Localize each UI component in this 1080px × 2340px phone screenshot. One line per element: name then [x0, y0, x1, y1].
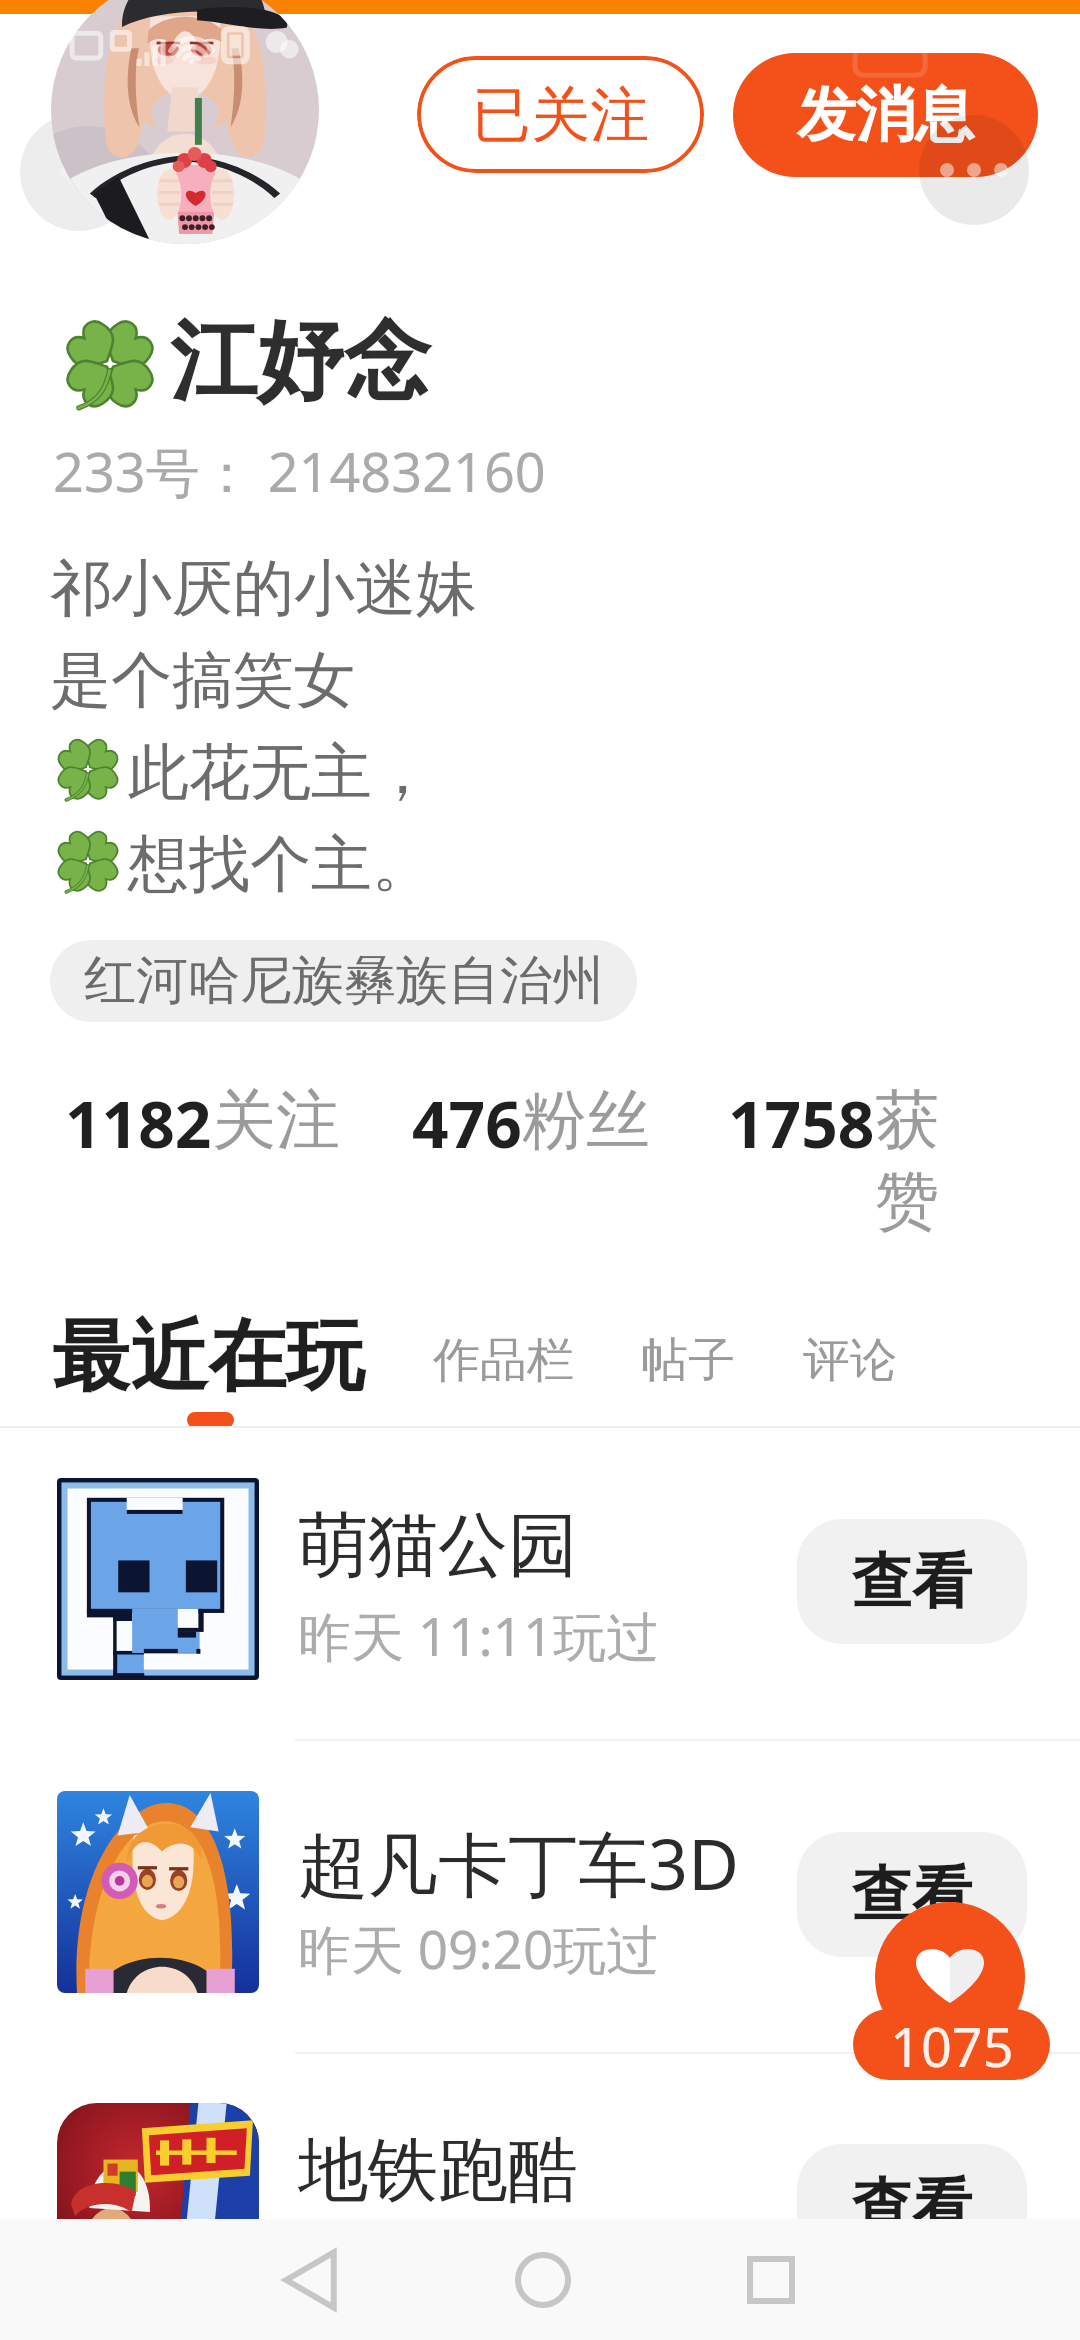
button[interactable]: 1075: [853, 2009, 1050, 2080]
staticText: 帖子: [641, 1331, 735, 1390]
button[interactable]: 发消息: [733, 53, 1038, 177]
button[interactable]: Avatar: [51, 0, 319, 244]
staticText: 昨天 11:11玩过: [298, 1599, 660, 1671]
staticText: 最近在玩: [52, 1308, 364, 1406]
staticText: 查看: [852, 2169, 972, 2245]
button[interactable]: Back: [20, 113, 138, 231]
staticText: 关注: [212, 1080, 340, 1161]
staticText: 1075: [890, 2009, 1014, 2080]
button[interactable]: 作品栏: [431, 1331, 576, 1390]
staticText: 已关注: [472, 78, 649, 152]
staticText: 476: [412, 1080, 522, 1167]
staticText: 是个搞笑女: [50, 642, 355, 719]
staticText: 评论: [803, 1331, 897, 1390]
staticText: 此花无主，: [128, 734, 433, 811]
staticText: 祁小厌的小迷妹: [50, 550, 477, 627]
button[interactable]: 476: [412, 1080, 650, 1167]
button[interactable]: Like: [875, 1902, 1025, 2052]
staticText: 昨天 09:20玩过: [298, 1912, 660, 1984]
button[interactable]: 最近在玩: [48, 1308, 368, 1406]
staticText: 江妤念: [170, 307, 431, 417]
button[interactable]: 1758: [728, 1080, 939, 1242]
staticText: 233号： 214832160: [53, 434, 546, 508]
staticText: 赞: [875, 1161, 939, 1242]
button[interactable]: 1182: [65, 1080, 340, 1167]
staticText: 昨天 12:15玩过: [298, 2224, 660, 2296]
staticText: 查看: [852, 1544, 972, 1620]
button[interactable]: Recents: [711, 2220, 831, 2340]
button[interactable]: 已关注: [417, 56, 704, 173]
button[interactable]: 萌猫公园: [0, 1422, 1080, 1734]
button[interactable]: More options: [919, 115, 1029, 225]
staticText: 超凡卡丁车3D: [298, 1815, 740, 1911]
staticText: 1758: [728, 1080, 875, 1167]
button[interactable]: 超凡卡丁车3D: [0, 1735, 1080, 2047]
staticText: 1182: [65, 1080, 212, 1167]
button[interactable]: 评论: [801, 1331, 899, 1390]
button[interactable]: Home: [483, 2220, 603, 2340]
staticText: 红河哈尼族彝族自治州: [84, 948, 604, 1014]
button[interactable]: 帖子: [639, 1331, 737, 1390]
staticText: 想找个主。: [128, 826, 433, 903]
button[interactable]: 红河哈尼族彝族自治州: [50, 940, 637, 1022]
button[interactable]: Back: [250, 2220, 370, 2340]
button[interactable]: 查看: [797, 1832, 1027, 1957]
staticText: 作品栏: [433, 1331, 574, 1390]
staticText: 萌猫公园: [298, 1502, 578, 1590]
staticText: 粉丝: [522, 1080, 650, 1161]
staticText: 发消息: [797, 78, 974, 152]
button[interactable]: 查看: [797, 1519, 1027, 1644]
staticText: 获: [875, 1080, 939, 1161]
button[interactable]: 查看: [797, 2144, 1027, 2269]
staticText: 地铁跑酷: [298, 2127, 578, 2215]
button[interactable]: 地铁跑酷: [0, 2047, 1080, 2340]
staticText: 查看: [852, 1857, 972, 1933]
